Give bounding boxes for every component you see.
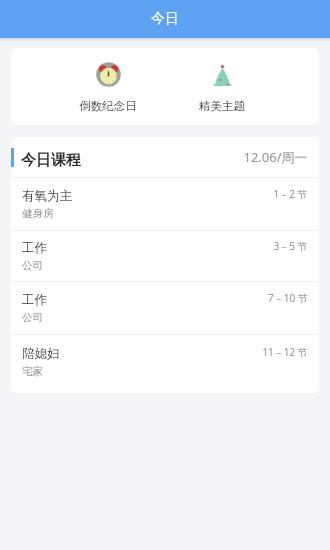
staticText: 3－5 节	[273, 239, 308, 253]
button[interactable]: 今日课程	[11, 137, 319, 177]
button[interactable]: 工作	[11, 231, 319, 281]
button[interactable]: 陪媳妇	[11, 335, 319, 388]
staticText: 精美主题	[199, 99, 245, 113]
staticText: 宅家	[22, 365, 43, 378]
other: 倒数纪念日	[96, 62, 121, 87]
staticText: 1－2 节	[273, 187, 308, 201]
staticText: 陪媳妇	[22, 346, 60, 362]
staticText: 今日课程	[21, 151, 81, 170]
other: 精美主题	[210, 62, 235, 87]
staticText: 工作	[22, 240, 47, 256]
button[interactable]: 倒数纪念日	[73, 60, 143, 113]
button[interactable]: 有氧为主	[11, 178, 319, 230]
staticText: 倒数纪念日	[79, 99, 137, 113]
staticText: 公司	[22, 311, 43, 324]
staticText: 工作	[22, 292, 47, 308]
staticText: 7－10 节	[268, 291, 308, 305]
staticText: 公司	[22, 259, 43, 272]
staticText: 有氧为主	[22, 188, 72, 204]
staticText: 健身房	[22, 207, 54, 220]
staticText: 11－12 节	[262, 345, 308, 359]
staticText: 今日	[151, 10, 179, 28]
button[interactable]: 工作	[11, 282, 319, 334]
staticText: 12.06/周一	[243, 148, 308, 166]
button[interactable]: 精美主题	[187, 60, 257, 113]
